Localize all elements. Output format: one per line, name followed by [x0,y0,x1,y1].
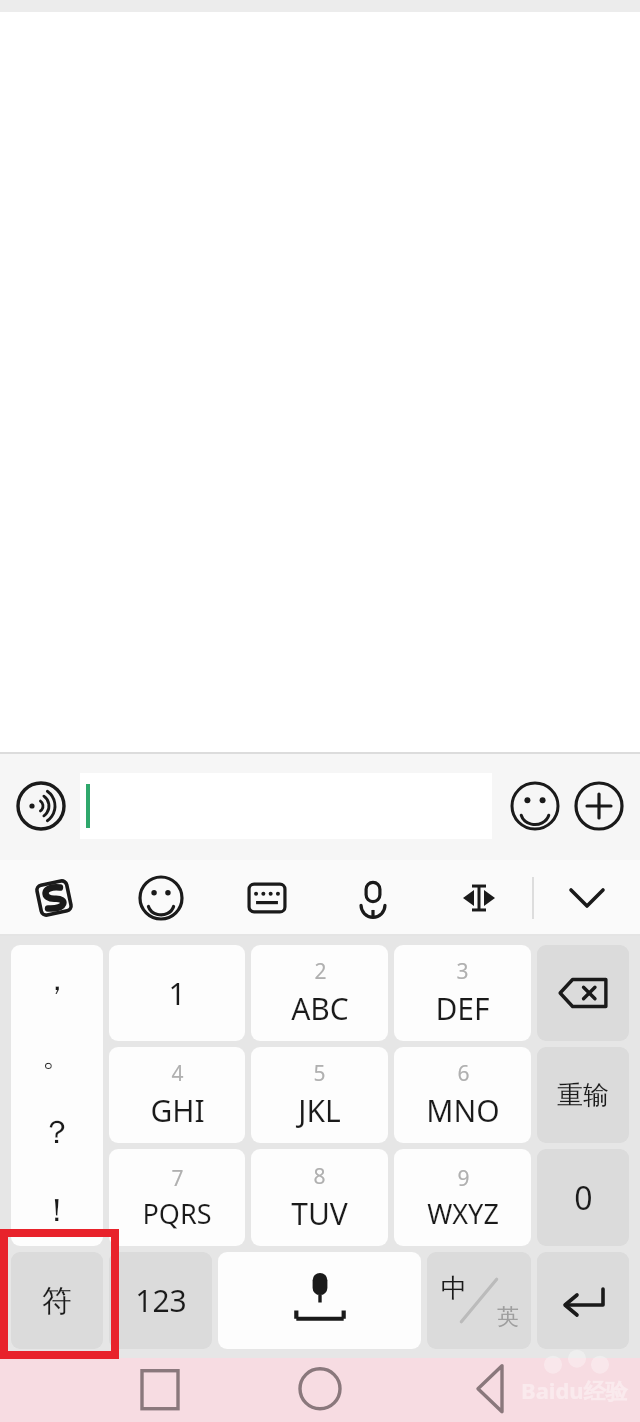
staticText: 符 [42,1282,72,1320]
staticText: 。 [42,1037,72,1075]
button[interactable]: Symbols [11,1252,103,1349]
button[interactable]: Backspace [537,945,629,1041]
staticText: 3 [456,957,469,986]
staticText: DEF [435,988,490,1029]
button[interactable]: Add more [570,777,628,835]
button[interactable]: Re-enter [537,1047,629,1143]
button[interactable]: WXYZ [394,1149,531,1246]
button[interactable]: DEF [394,945,531,1041]
button[interactable]: 1 [109,945,245,1041]
button[interactable]: Enter [537,1252,629,1349]
button[interactable]: 123 [109,1252,212,1349]
staticText: ！ [41,1190,73,1230]
button[interactable]: TUV [251,1149,388,1246]
staticText: TUV [291,1193,348,1234]
staticText: ， [42,961,72,999]
staticText: ？ [41,1112,73,1152]
staticText: 6 [457,1059,470,1088]
staticText: 4 [171,1059,184,1088]
staticText: MNO [426,1090,500,1131]
staticText: Baidu经验 [521,1375,628,1405]
button[interactable]: Chinese English toggle [427,1252,531,1349]
staticText: ABC [291,988,349,1029]
staticText: WXYZ [427,1195,499,1232]
staticText: 5 [313,1059,326,1088]
button[interactable]: 0 [537,1149,629,1246]
button[interactable]: Space [218,1252,421,1349]
staticText: 2 [314,957,327,986]
staticText: 中 [441,1272,467,1305]
staticText: 0 [574,1176,593,1220]
button[interactable]: Move cursor [426,860,532,936]
button[interactable]: Hide keyboard [534,860,640,936]
button[interactable] [80,773,492,839]
button[interactable]: Emoji [506,777,564,835]
staticText: 1 [168,973,186,1014]
button[interactable]: Voice broadcast [12,777,70,835]
button[interactable]: MNO [394,1047,531,1143]
button[interactable]: PQRS [109,1149,245,1246]
staticText: 7 [171,1164,184,1193]
staticText: 英 [497,1303,519,1331]
button[interactable]: Voice input [320,860,426,936]
button[interactable]: Emoticons [107,860,214,936]
button[interactable]: Punctuation [11,945,103,1246]
staticText: 123 [135,1280,187,1321]
button[interactable]: GHI [109,1047,245,1143]
staticText: JKL [298,1090,341,1131]
button[interactable]: Sogou input settings [0,860,107,936]
button[interactable]: JKL [251,1047,388,1143]
button[interactable]: ABC [251,945,388,1041]
staticText: 8 [313,1162,326,1191]
staticText: PQRS [142,1195,212,1232]
button[interactable]: Keyboard layout [214,860,320,936]
staticText: 9 [457,1164,470,1193]
staticText: 重输 [557,1079,609,1112]
staticText: GHI [150,1090,205,1131]
